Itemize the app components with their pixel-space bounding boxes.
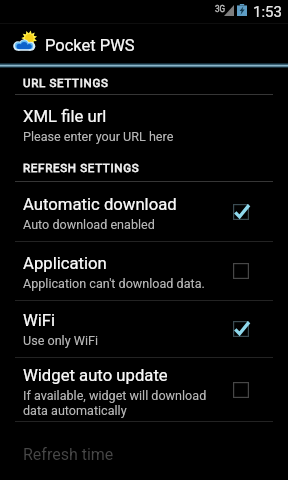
button[interactable]: XML file url	[0, 95, 288, 155]
staticText: 3G	[215, 4, 226, 14]
staticText: URL SETTINGS	[23, 76, 109, 89]
staticText: Auto download enabled	[23, 217, 155, 232]
staticText: Application can't download data.	[23, 276, 205, 291]
staticText: Please enter your URL here	[23, 129, 174, 144]
staticText: Use only WiFi	[23, 333, 99, 348]
staticText: WiFi	[23, 311, 56, 331]
staticText: Pocket PWS	[45, 36, 135, 55]
staticText: Widget auto update	[23, 366, 168, 386]
staticText: REFRESH SETTINGS	[23, 161, 140, 174]
button[interactable]: Application checkbox, not checked	[227, 257, 255, 285]
button[interactable]: Automatic download checkbox, checked	[227, 198, 255, 226]
button[interactable]: Application	[0, 242, 288, 300]
staticText: Refresh time	[23, 445, 114, 464]
staticText: Application	[23, 254, 107, 274]
staticText: data automatically	[23, 403, 127, 418]
button[interactable]: Refresh time	[0, 422, 288, 478]
staticText: XML file url	[23, 107, 107, 127]
staticText: If available, widget will download	[23, 388, 207, 403]
button[interactable]: Automatic download	[0, 182, 288, 241]
button[interactable]: WiFi	[0, 301, 288, 357]
button[interactable]: Widget auto update	[0, 358, 288, 421]
staticText: 1:53	[253, 3, 282, 21]
staticText: Automatic download	[23, 195, 177, 215]
button[interactable]: WiFi checkbox, checked	[227, 315, 255, 343]
button[interactable]: Widget auto update checkbox, not checked	[227, 376, 255, 404]
